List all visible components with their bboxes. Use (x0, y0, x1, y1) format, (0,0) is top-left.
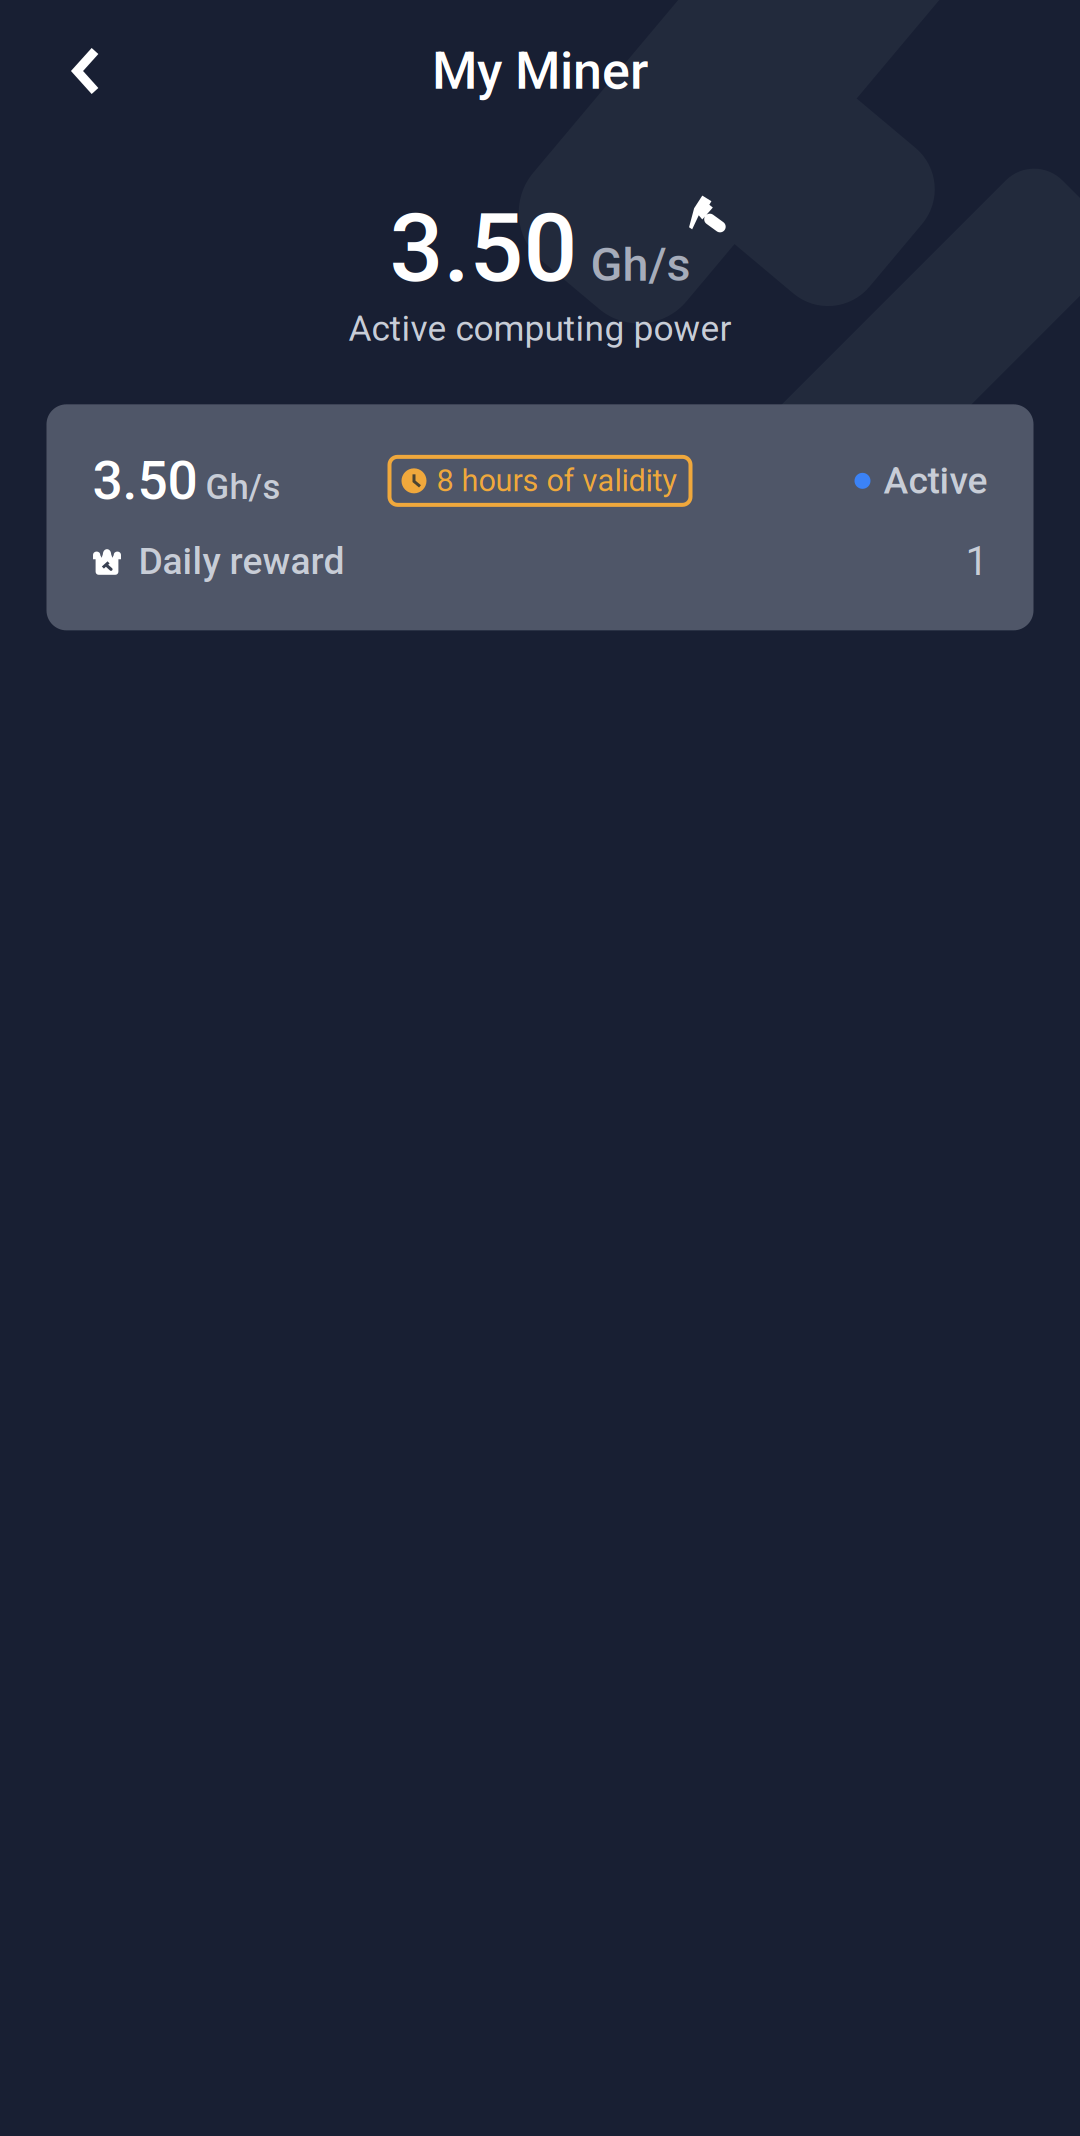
staticText: Active computing power (348, 308, 731, 349)
staticText: Gh/s (590, 237, 690, 292)
button[interactable]: Back (31, 16, 141, 126)
staticText: 3.50 (389, 193, 577, 304)
staticText: 1 (965, 538, 987, 585)
staticText: 8 hours of validity (436, 463, 677, 499)
staticText: My Miner (432, 40, 648, 101)
staticText: 3.50 (92, 450, 197, 512)
staticText: Active (883, 459, 987, 503)
staticText: Gh/s (205, 467, 280, 507)
staticText: Daily reward (138, 539, 344, 583)
